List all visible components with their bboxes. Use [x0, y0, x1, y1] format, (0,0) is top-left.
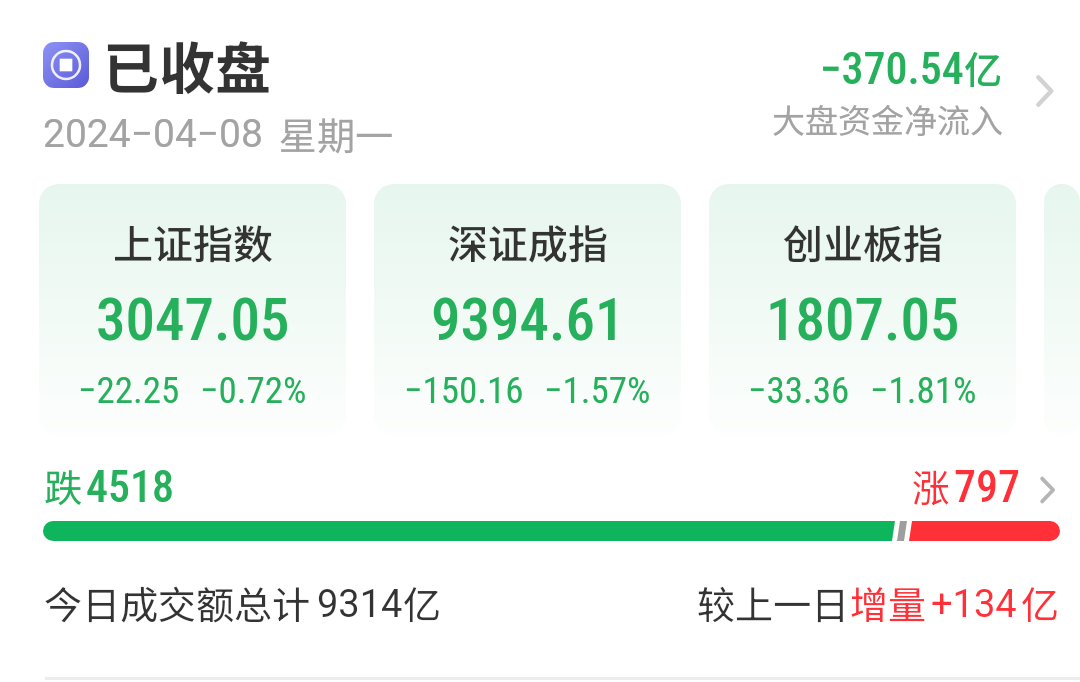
staticText: 亿 [964, 40, 1003, 95]
button[interactable]: 上证指数 [39, 184, 346, 436]
staticText: 2024−04−08 [43, 111, 263, 157]
button[interactable]: 跌 [0, 458, 1080, 516]
staticText: 亿 [403, 575, 442, 627]
button[interactable]: 创业板指 [709, 184, 1016, 436]
staticText: −1.81% [870, 369, 977, 412]
staticText: 创业板指 [783, 213, 943, 271]
staticText: 4518 [86, 461, 174, 513]
button[interactable]: 深证成指 [374, 184, 681, 436]
staticText: −150.16 [404, 369, 524, 412]
staticText: 大盘资金净流入 [772, 95, 1003, 143]
staticText: 星期一 [279, 106, 394, 161]
button[interactable]: Open rise and fall detail [1036, 475, 1058, 505]
staticText: 深证成指 [448, 213, 608, 271]
staticText: 涨 [912, 458, 951, 513]
button[interactable]: 已收盘 [0, 0, 1080, 170]
button[interactable] [1044, 184, 1080, 436]
staticText: −370.54 [820, 43, 964, 95]
staticText: −0.72% [200, 369, 307, 412]
staticText: 797 [954, 461, 1020, 513]
staticText: −22.25 [78, 369, 180, 412]
staticText: 亿 [1021, 575, 1060, 627]
staticText: 跌 [44, 458, 83, 513]
staticText: 上证指数 [113, 213, 273, 271]
staticText: 已收盘 [103, 24, 271, 105]
button[interactable]: Open market fund flow [1031, 73, 1057, 109]
staticText: 1807.05 [766, 285, 960, 354]
staticText: 增量 [850, 575, 927, 627]
staticText: −33.36 [748, 369, 850, 412]
staticText: 较上一日 [697, 575, 850, 627]
staticText: 9314 [317, 582, 403, 627]
staticText: +134 [931, 582, 1017, 627]
staticText: 今日成交额总计 [44, 575, 311, 627]
staticText: 3047.05 [96, 285, 290, 354]
staticText: −1.57% [544, 369, 651, 412]
staticText: 9394.61 [431, 285, 625, 354]
